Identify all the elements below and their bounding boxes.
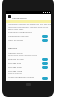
staticText: Notification service xyxy=(8,35,29,38)
button[interactable] xyxy=(6,33,51,37)
button[interactable] xyxy=(6,68,51,73)
staticText: Refresh on tap xyxy=(8,58,24,61)
button[interactable]: Toggle switch xyxy=(42,35,48,38)
staticText: Show alerts when updates arrive xyxy=(8,54,37,57)
staticText: Common notifications xyxy=(8,31,32,34)
button[interactable] xyxy=(6,50,51,55)
staticText: affect other apps. xyxy=(8,28,24,31)
staticText: Default internal xyxy=(8,72,22,75)
button[interactable]: Toggle switch xyxy=(42,66,48,69)
staticText: Notifications xyxy=(12,16,27,19)
button[interactable]: Toggle switch xyxy=(42,62,48,65)
button[interactable] xyxy=(6,37,51,41)
button[interactable]: Toggle switch xyxy=(42,39,48,42)
staticText: Storage used xyxy=(8,70,23,73)
staticText: take effect immediately. Changes here do… xyxy=(8,26,49,29)
button[interactable] xyxy=(6,56,51,60)
button[interactable]: Toggle switch xyxy=(42,77,48,80)
staticText: Notification settings are applied for th… xyxy=(8,23,51,26)
button[interactable]: Toggle switch xyxy=(42,58,48,61)
button[interactable] xyxy=(6,29,51,33)
staticText: Storage info xyxy=(8,62,22,65)
staticText: Allow notification sound xyxy=(8,76,34,79)
button[interactable]: App icon xyxy=(8,15,11,18)
staticText: Update alerts xyxy=(8,52,23,55)
staticText: Options xyxy=(8,46,18,49)
staticText: Alert on Email xyxy=(8,39,24,42)
button[interactable] xyxy=(6,75,51,79)
button[interactable] xyxy=(6,64,51,68)
button[interactable] xyxy=(6,60,51,64)
staticText: Storage path xyxy=(8,66,22,69)
